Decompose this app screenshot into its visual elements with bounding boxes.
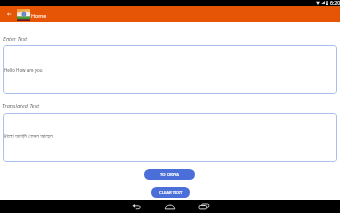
staticText: Translated Text: [2, 102, 40, 110]
staticText: Home: [31, 12, 47, 19]
staticText: CLEAR TEXT: [159, 190, 183, 196]
button[interactable]: হ্যালো আপনি কেমন আছেন: [3, 113, 337, 162]
button[interactable]: Back: [123, 200, 149, 213]
staticText: Hello How are you: [4, 67, 43, 73]
staticText: TO ORIYA: [160, 172, 179, 178]
button[interactable]: Hello How are you: [3, 45, 337, 94]
button[interactable]: Home: [157, 200, 183, 213]
button[interactable]: Recent apps: [191, 200, 217, 213]
staticText: 6:20: [330, 0, 340, 5]
button[interactable]: Navigate up: [2, 6, 16, 22]
staticText: Enter Text: [3, 35, 28, 43]
staticText: হ্যালো আপনি কেমন আছেন: [3, 132, 53, 140]
button[interactable]: CLEAR TEXT: [151, 187, 190, 198]
button[interactable]: TO ORIYA: [144, 169, 195, 180]
